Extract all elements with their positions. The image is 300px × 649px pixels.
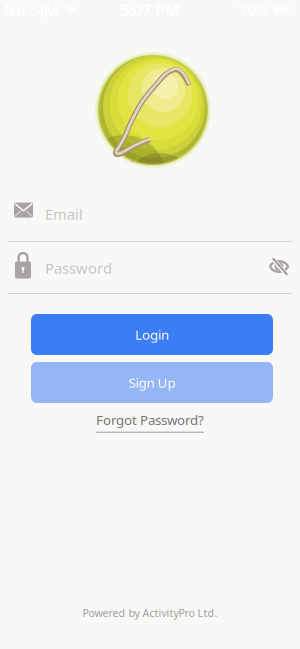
button[interactable]: Sign Up (31, 362, 273, 403)
staticText: Login (135, 326, 169, 343)
button[interactable]: Login (31, 314, 273, 355)
staticText: Sign Up (128, 374, 175, 391)
button[interactable]: Forgot Password? (96, 411, 204, 433)
staticText: Email (45, 204, 83, 224)
staticText: 5:07 PM (120, 0, 180, 21)
staticText: Forgot Password? (96, 411, 204, 429)
button[interactable]: Email (0, 199, 300, 227)
button[interactable] (269, 255, 300, 274)
staticText: Powered by ActivityPro Ltd. (82, 606, 217, 620)
staticText: Password (45, 258, 112, 278)
button[interactable]: Password (0, 251, 269, 279)
